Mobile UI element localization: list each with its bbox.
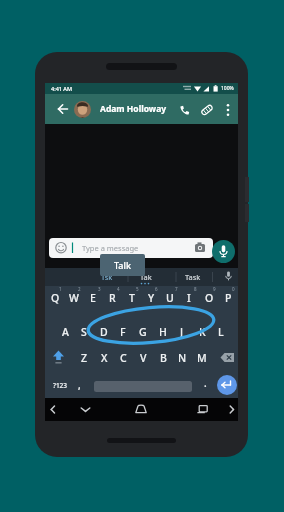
staticText: 1 [59,286,62,292]
button[interactable]: Type a message [49,238,213,258]
button[interactable] [55,101,71,117]
staticText: 4 [117,286,120,292]
button[interactable] [227,404,237,415]
button[interactable]: U [161,291,179,305]
staticText: I [187,291,191,305]
staticText: 0 [232,286,235,292]
button[interactable]: Talk [100,254,145,276]
button[interactable] [196,403,209,415]
button[interactable]: G [134,325,152,339]
button[interactable]: D [95,325,113,339]
staticText: M [197,351,207,365]
button[interactable]: ?123 [50,378,70,392]
button[interactable] [222,102,234,118]
button[interactable]: , [73,378,85,392]
staticText: Q [51,291,60,305]
staticText: O [205,291,214,305]
staticText: ?123 [53,381,68,390]
button[interactable]: W [65,291,83,305]
staticText: Tak [140,272,152,282]
staticText: A [62,325,69,339]
staticText: L [218,325,224,339]
staticText: K [199,325,206,339]
button[interactable] [79,404,92,415]
button[interactable] [220,352,237,364]
staticText: 2 [78,286,81,292]
button[interactable]: Tsk [92,268,122,286]
staticText: U [166,291,174,305]
button[interactable]: F [114,325,132,339]
staticText: Z [81,351,88,365]
staticText: Y [148,291,155,305]
staticText: V [140,351,147,365]
button[interactable]: I [180,291,198,305]
button[interactable]: C [114,351,132,365]
staticText: 8 [194,286,197,292]
button[interactable]: M [193,351,211,365]
button[interactable]: J [173,325,191,339]
button[interactable] [134,403,148,415]
staticText: H [159,325,167,339]
staticText: Type a message [82,243,139,253]
button[interactable] [74,101,91,118]
staticText: E [90,291,96,305]
staticText: 5 [136,286,139,292]
staticText: 7 [175,286,178,292]
staticText: B [160,351,167,365]
staticText: 4:41 AM [51,85,73,92]
staticText: Adam Holloway [100,103,167,115]
button[interactable]: N [173,351,191,365]
staticText: . [204,376,207,390]
button[interactable] [50,349,67,365]
staticText: P [225,291,232,305]
button[interactable]: . [199,376,211,390]
staticText: C [120,351,127,365]
staticText: G [139,325,147,339]
button[interactable] [212,240,235,263]
staticText: J [180,325,184,339]
staticText: F [120,325,126,339]
staticText: T [129,291,135,305]
staticText: Tsk [101,272,113,282]
button[interactable]: Q [46,291,64,305]
staticText: 6 [155,286,158,292]
staticText: , [78,378,81,392]
staticText: Task [185,272,201,282]
button[interactable]: X [95,351,113,365]
button[interactable]: P [219,291,237,305]
button[interactable]: S [75,325,93,339]
staticText: W [69,291,79,305]
staticText: 9 [213,286,216,292]
staticText: N [178,351,187,365]
button[interactable]: K [193,325,211,339]
button[interactable] [177,102,193,118]
button[interactable]: L [212,325,230,339]
staticText: D [100,325,108,339]
staticText: R [109,291,116,305]
staticText: Talk [114,259,131,271]
button[interactable]: A [56,325,74,339]
button[interactable]: T [123,291,141,305]
button[interactable]: Task [178,268,208,286]
button[interactable]: B [154,351,172,365]
button[interactable]: H [154,325,172,339]
staticText: X [101,351,108,365]
button[interactable]: E [84,291,102,305]
button[interactable]: O [200,291,218,305]
staticText: S [81,325,87,339]
staticText: 3 [98,286,101,292]
button[interactable]: Z [75,351,93,365]
button[interactable]: R [103,291,121,305]
button[interactable] [217,375,237,395]
staticText: 100% [221,85,234,92]
button[interactable]: Y [142,291,160,305]
button[interactable]: V [134,351,152,365]
button[interactable] [199,102,215,118]
button[interactable]: Tak [131,268,161,286]
button[interactable] [48,404,58,415]
